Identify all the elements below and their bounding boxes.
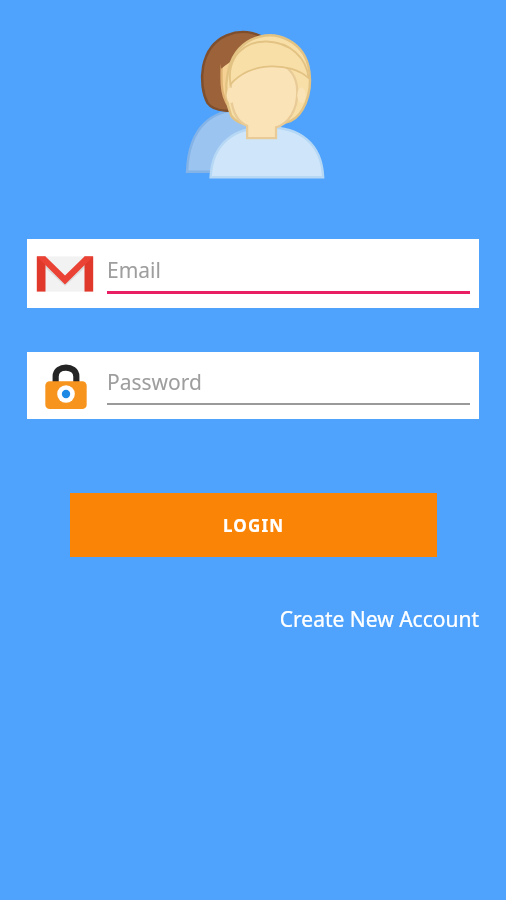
staticText: Email xyxy=(107,256,161,285)
button[interactable]: Gmail xyxy=(27,239,479,308)
button[interactable]: LOGIN xyxy=(70,493,437,557)
other: Gmail xyxy=(35,254,95,294)
staticText: Create New Account xyxy=(279,605,479,634)
other: Password lock xyxy=(44,362,88,410)
other: User avatar xyxy=(181,22,333,178)
staticText: LOGIN xyxy=(223,514,285,537)
staticText: Password xyxy=(107,368,202,397)
button[interactable]: Password lock xyxy=(27,352,479,419)
button[interactable]: Create New Account xyxy=(236,600,479,638)
